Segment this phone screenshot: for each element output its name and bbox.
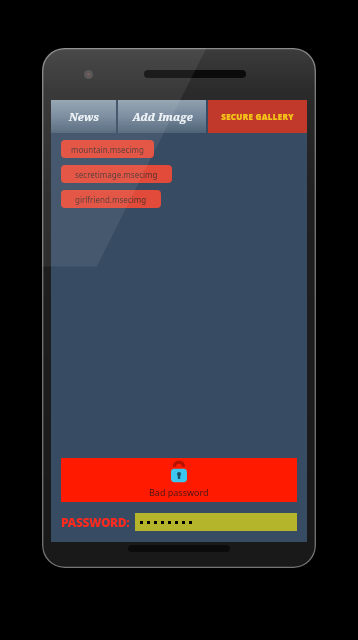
button[interactable]: secretimage.msecimg	[61, 165, 172, 183]
button[interactable]: News	[51, 100, 116, 133]
staticText: Add Image	[132, 109, 193, 124]
button[interactable]: SECURE GALLERY	[208, 100, 307, 133]
staticText: News	[69, 109, 99, 124]
staticText: PASSWORD:	[61, 514, 130, 530]
button[interactable]: Add Image	[118, 100, 206, 133]
staticText: secretimage.msecimg	[75, 169, 158, 180]
button[interactable]: girlfriend.msecimg	[61, 190, 161, 208]
staticText: Bad password	[149, 486, 209, 498]
button[interactable]: Unlock secure gallery	[61, 458, 297, 502]
staticText: mountain.msecimg	[71, 144, 144, 155]
staticText: girlfriend.msecimg	[75, 194, 147, 205]
staticText: SECURE GALLERY	[221, 111, 294, 122]
button[interactable]: mountain.msecimg	[61, 140, 154, 158]
button[interactable]: Password input	[135, 513, 297, 531]
